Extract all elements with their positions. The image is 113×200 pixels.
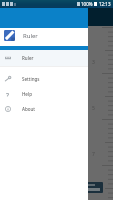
staticText: 12:13 xyxy=(99,1,111,7)
staticText: Settings xyxy=(22,76,40,82)
button[interactable]: Ruler xyxy=(0,50,88,66)
staticText: 7 xyxy=(92,151,95,158)
staticText: Help xyxy=(22,91,32,97)
staticText: 3 xyxy=(92,59,95,66)
staticText: ? xyxy=(6,91,10,97)
staticText: 100% xyxy=(81,1,93,7)
staticText: Ruler xyxy=(23,32,38,40)
button[interactable]: ? xyxy=(0,86,88,101)
button[interactable]: Settings xyxy=(0,71,88,86)
button[interactable]: About xyxy=(0,101,88,116)
staticText: Ruler xyxy=(22,55,34,61)
staticText: 5 xyxy=(92,105,95,112)
staticText: About xyxy=(22,106,36,112)
